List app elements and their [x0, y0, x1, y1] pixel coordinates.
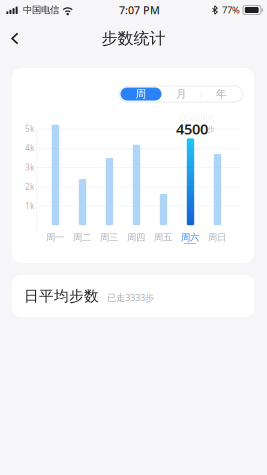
staticText: 已走3333步 [107, 291, 154, 304]
staticText: 5k [25, 123, 34, 134]
staticText: 日平均步数 [24, 287, 99, 305]
staticText: 4500 [176, 119, 208, 138]
staticText: 周三 [100, 232, 118, 243]
staticText: 77% [222, 4, 240, 16]
button[interactable]: 周 [120, 87, 161, 100]
button[interactable]: 月 [161, 87, 201, 100]
staticText: 月 [176, 87, 187, 100]
button[interactable]: 返回 [0, 26, 31, 51]
staticText: 3月8日周六 [178, 113, 214, 122]
staticText: 中国电信 [23, 4, 59, 16]
staticText: 1k [25, 201, 34, 211]
staticText: 周四 [127, 232, 145, 243]
staticText: 步数统计 [101, 29, 165, 48]
staticText: 步 [207, 124, 215, 134]
staticText: 周日 [208, 232, 226, 243]
staticText: 4k [25, 143, 34, 153]
staticText: 周二 [73, 232, 91, 243]
staticText: 7:07 PM [119, 3, 160, 17]
staticText: 2k [25, 181, 34, 192]
staticText: 周五 [154, 232, 172, 243]
staticText: 年 [216, 87, 227, 100]
staticText: 周六 [181, 232, 199, 243]
staticText: 周 [135, 87, 146, 100]
button[interactable]: 年 [201, 87, 241, 100]
staticText: 3k [25, 162, 34, 173]
staticText: 周一 [46, 232, 64, 243]
